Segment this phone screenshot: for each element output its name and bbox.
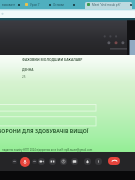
button[interactable]: Close tab xyxy=(72,3,76,7)
staticText: виховател у гр xyxy=(2,3,16,7)
staticText: Основи захисту xyxy=(53,3,71,7)
button[interactable] xyxy=(85,2,132,9)
button[interactable]: More options xyxy=(12,159,17,164)
staticText: ДЕННА xyxy=(22,68,34,72)
button[interactable]: Chat xyxy=(71,158,78,165)
button[interactable]: Close tab xyxy=(48,3,52,7)
button[interactable]: Camera xyxy=(38,158,45,165)
button[interactable]: Share screen xyxy=(60,158,67,165)
staticText: Meet "shd mouk ph" xyxy=(92,3,121,7)
button[interactable]: Close tab xyxy=(129,3,133,7)
button[interactable]: Meet "shd mouk ph" xyxy=(92,2,126,7)
staticText: 25 xyxy=(22,75,26,79)
staticText: надання заміну НПП 2024 відкритим як в i… xyxy=(2,148,93,152)
button[interactable]: Reactions xyxy=(84,158,91,165)
button[interactable]: More options xyxy=(95,158,102,165)
button[interactable]: More options xyxy=(32,159,37,164)
button[interactable]: виховател у гр xyxy=(2,2,16,7)
button[interactable]: Основи захисту xyxy=(53,2,71,7)
button[interactable]: Урок 7 Основи зах xyxy=(30,2,49,7)
button[interactable]: Microphone xyxy=(20,157,30,167)
staticText: ФАХОВИЙ МОЛОДШИЙ БАКАЛАВР xyxy=(22,57,83,62)
button[interactable]: Close tab xyxy=(17,3,21,7)
staticText: Урок 7 Основи зах xyxy=(30,3,49,7)
staticText: БОРОНИ ДЛЯ ЗДОБУВАЧІВ ВИЩОЇ xyxy=(0,127,89,134)
button[interactable]: Participants xyxy=(49,158,56,165)
button[interactable]: End call xyxy=(108,157,120,165)
